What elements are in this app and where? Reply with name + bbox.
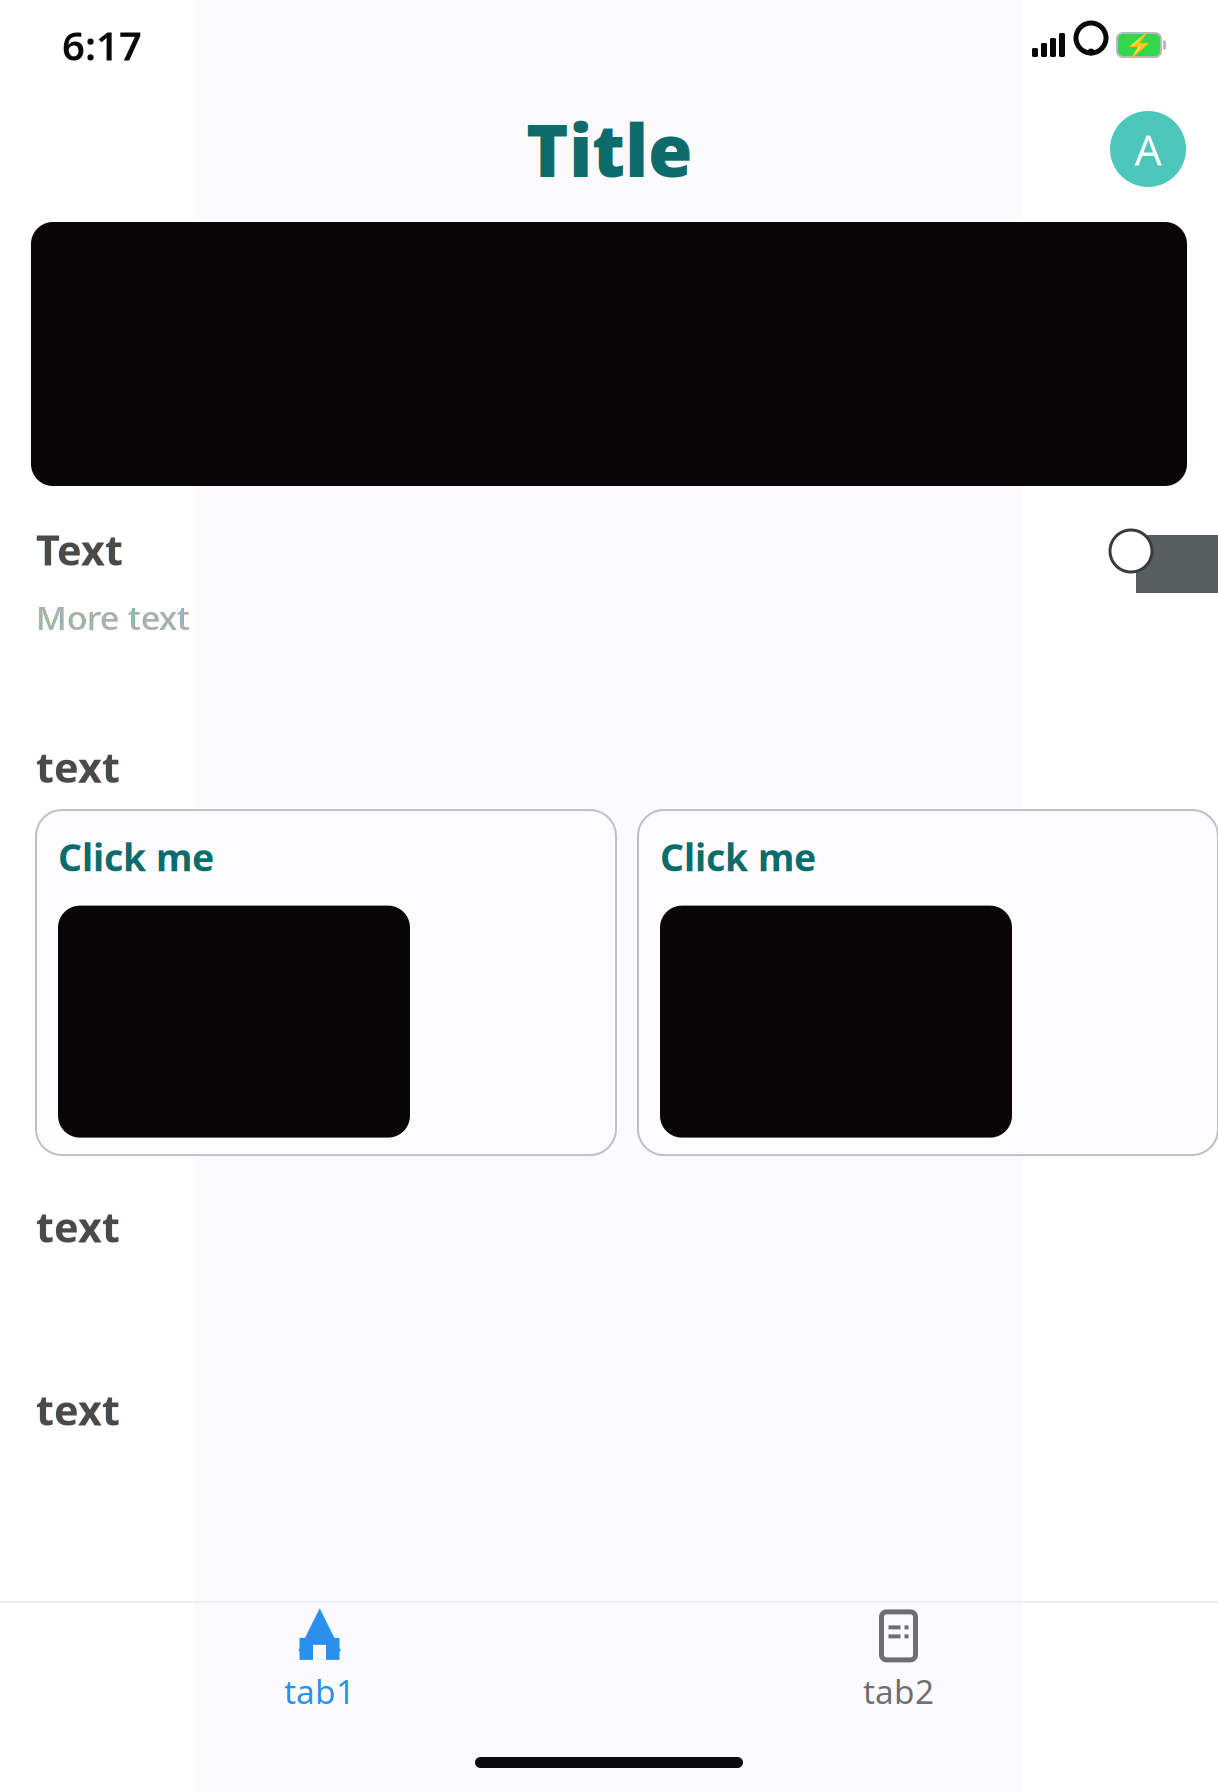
staticText: Text	[36, 522, 123, 577]
button[interactable]: ▲	[30, 1599, 609, 1725]
staticText: text	[36, 1382, 120, 1437]
staticText: text	[36, 739, 120, 794]
staticText: Click me	[58, 832, 214, 882]
button[interactable]: Account	[1110, 111, 1186, 187]
staticText: text	[36, 1199, 120, 1254]
button[interactable]: tab2	[609, 1599, 1188, 1725]
staticText: ▲	[298, 1593, 341, 1657]
staticText: More text	[36, 595, 190, 639]
button[interactable]: Toggle	[1110, 522, 1218, 606]
staticText: tab2	[863, 1669, 934, 1713]
staticText: ⚡	[1125, 32, 1153, 58]
staticText: Title	[526, 101, 692, 197]
staticText: Click me	[660, 832, 816, 882]
staticText: tab1	[284, 1669, 355, 1713]
button[interactable]: Click me	[36, 810, 616, 1155]
button[interactable]: Click me	[638, 810, 1218, 1155]
staticText: 6:17	[62, 18, 142, 71]
staticText: A	[1134, 121, 1161, 177]
